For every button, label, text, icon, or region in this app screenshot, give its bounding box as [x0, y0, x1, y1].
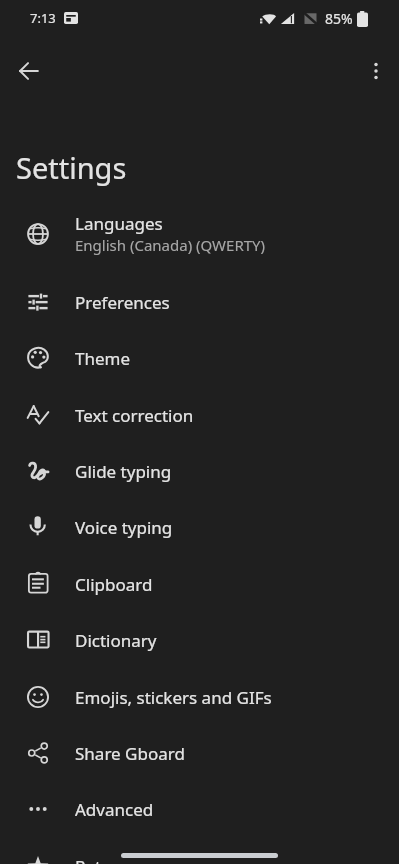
- button[interactable]: Preferences: [0, 276, 399, 332]
- staticText: Emojis, stickers and GIFs: [75, 686, 272, 709]
- button[interactable]: Emojis, stickers and GIFs: [0, 671, 399, 727]
- staticText: Settings: [16, 148, 127, 187]
- staticText: Clipboard: [75, 573, 153, 596]
- button[interactable]: Back: [5, 47, 53, 95]
- button[interactable]: Dictionary: [0, 614, 399, 670]
- button[interactable]: Rate us: [0, 840, 399, 864]
- button[interactable]: Share Gboard: [0, 727, 399, 783]
- staticText: 7:13: [30, 9, 56, 27]
- staticText: Share Gboard: [75, 742, 185, 765]
- button[interactable]: Advanced: [0, 783, 399, 839]
- staticText: Theme: [75, 347, 131, 370]
- button[interactable]: Voice typing: [0, 501, 399, 557]
- staticText: Advanced: [75, 798, 154, 821]
- button[interactable]: Theme: [0, 332, 399, 388]
- button[interactable]: Languages: [0, 202, 399, 269]
- staticText: Languages: [75, 212, 163, 235]
- button[interactable]: Clipboard: [0, 558, 399, 614]
- button[interactable]: Text correction: [0, 389, 399, 445]
- staticText: Text correction: [75, 404, 194, 427]
- staticText: Voice typing: [75, 516, 173, 539]
- staticText: Dictionary: [75, 629, 157, 652]
- staticText: 85%: [325, 9, 353, 28]
- staticText: English (Canada) (QWERTY): [75, 235, 266, 255]
- button[interactable]: More options: [352, 47, 399, 95]
- staticText: Preferences: [75, 291, 170, 314]
- staticText: Glide typing: [75, 460, 172, 483]
- button[interactable]: Glide typing: [0, 445, 399, 501]
- staticText: Rate us: [75, 855, 134, 864]
